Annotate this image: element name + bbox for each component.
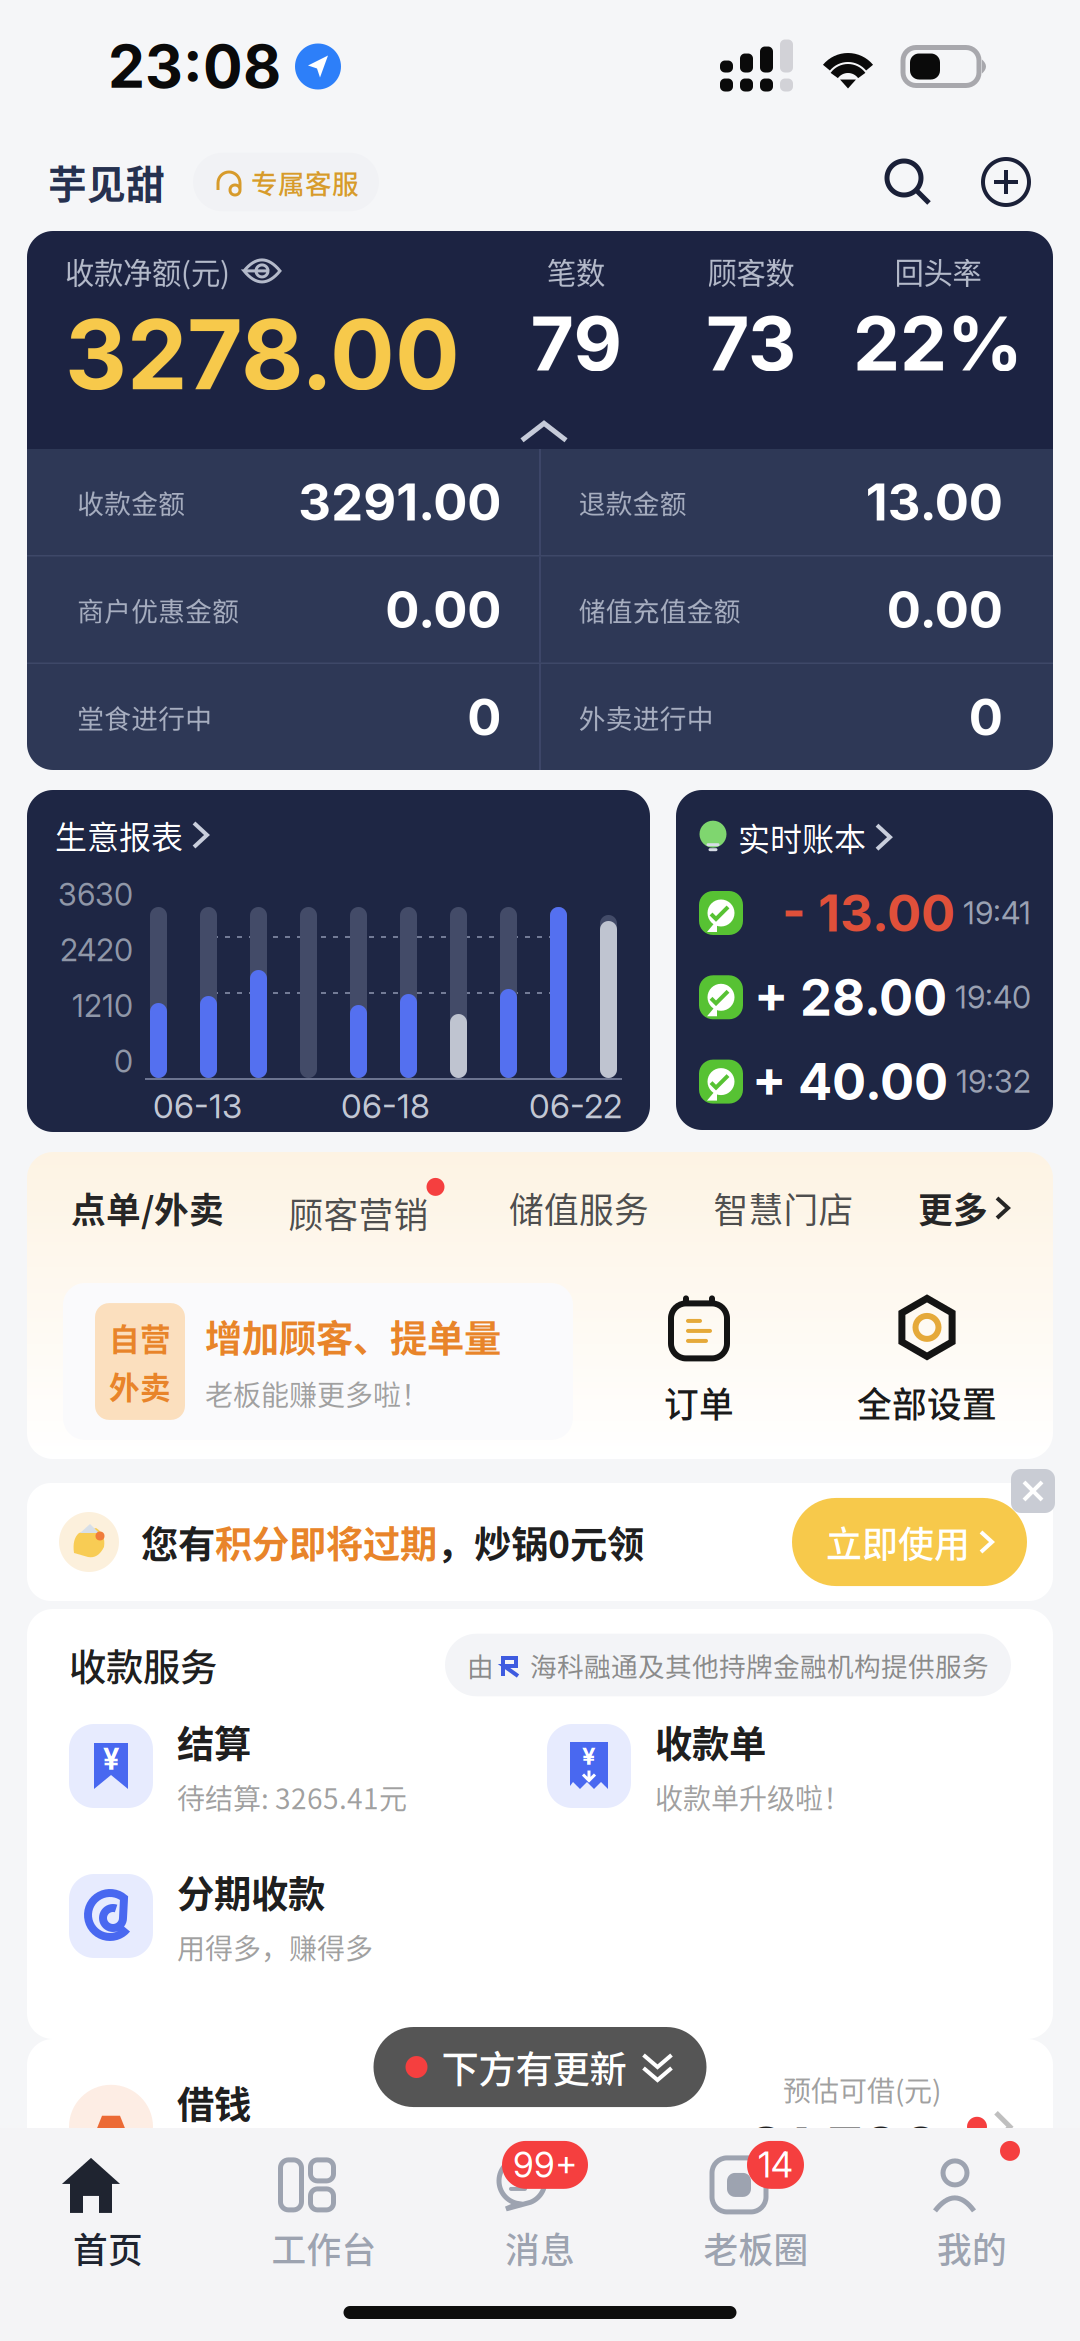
staticText: 增加顾客、提单量 — [205, 1309, 501, 1363]
staticText: 老板能赚更多啦！ — [205, 1373, 429, 1414]
staticText: 回头率 — [894, 250, 981, 292]
staticText: 收款净额(元) — [65, 250, 230, 292]
staticText: 立即使用 — [826, 1516, 970, 1568]
button[interactable]: 全部设置 — [847, 1283, 1007, 1440]
staticText: 待结算: 3265.41元 — [177, 1777, 407, 1817]
staticText: 点单/外卖 — [71, 1183, 224, 1233]
staticText: 3630 — [58, 876, 133, 913]
staticText: 自营 — [109, 1315, 171, 1359]
staticText: 借钱 — [177, 2075, 251, 2130]
button[interactable]: 自营 — [63, 1283, 573, 1440]
button[interactable]: 生意报表 — [27, 790, 650, 1132]
staticText: 0 — [969, 686, 1003, 748]
button[interactable]: 更多 — [918, 1183, 1009, 1233]
button[interactable]: 储值服务 — [509, 1183, 649, 1233]
staticText: 81,700 — [747, 2113, 941, 2184]
staticText: 19:32 — [956, 1063, 1031, 1100]
staticText: 13.00 — [866, 471, 1003, 533]
staticText: 我的 — [937, 2223, 1007, 2273]
staticText: 收款单 — [655, 1715, 766, 1769]
staticText: 06-22 — [529, 1086, 622, 1126]
staticText: 99+ — [513, 2144, 577, 2186]
button[interactable]: 关闭 — [1011, 1469, 1055, 1513]
staticText: 芋见甜 — [48, 154, 165, 210]
staticText: 收款金额 — [77, 483, 185, 521]
staticText: 储值服务 — [509, 1183, 649, 1233]
staticText: 14 — [758, 2144, 793, 2186]
staticText: ¥ — [103, 1741, 119, 1777]
staticText: 随借随还，最快1分钟放款 — [177, 2137, 501, 2178]
staticText: 19:41 — [963, 894, 1031, 931]
staticText: 0.00 — [385, 579, 501, 640]
staticText: 3291.00 — [298, 471, 501, 533]
staticText: 2420 — [60, 932, 133, 969]
button[interactable]: 点单/外卖 — [71, 1183, 224, 1233]
staticText: 外卖进行中 — [579, 698, 714, 736]
staticText: - 13.00 — [782, 882, 955, 944]
button[interactable]: 首页 — [0, 2128, 216, 2276]
staticText: 0 — [467, 686, 501, 748]
staticText: 专属客服 — [251, 163, 359, 201]
staticText: 智慧门店 — [713, 1183, 853, 1233]
button[interactable]: 立即使用 — [792, 1498, 1027, 1586]
staticText: ¥ — [582, 1741, 596, 1770]
staticText: 堂食进行中 — [77, 698, 212, 736]
staticText: 23:08 — [108, 31, 281, 102]
button[interactable]: 订单 — [629, 1283, 769, 1440]
staticText: + 40.00 — [752, 1051, 948, 1112]
button[interactable]: 14 — [648, 2128, 864, 2276]
staticText: 退款金额 — [579, 483, 687, 521]
staticText: 0.00 — [887, 579, 1003, 640]
staticText: 商户优惠金额 — [77, 590, 239, 629]
button[interactable]: 智慧门店 — [713, 1183, 853, 1233]
staticText: 积分即将过期 — [215, 1515, 437, 1569]
button[interactable]: 搜索 — [882, 156, 934, 208]
staticText: 下方有更新 — [441, 2040, 626, 2094]
button[interactable]: 下方有更新 — [373, 2027, 706, 2107]
staticText: 06-18 — [341, 1086, 430, 1126]
staticText: 由 — [467, 1646, 494, 1684]
staticText: 06-13 — [153, 1086, 242, 1126]
staticText: 全部设置 — [857, 1377, 997, 1428]
button[interactable]: 实时账本 — [676, 790, 1053, 1130]
button[interactable]: 分期收款 — [69, 1871, 539, 1961]
staticText: 海科融通及其他持牌金融机构提供服务 — [530, 1646, 989, 1684]
staticText: 0 — [114, 1043, 133, 1080]
staticText: 外卖 — [109, 1363, 171, 1408]
staticText: 更多 — [918, 1183, 988, 1233]
staticText: 用得多，赚得多 — [177, 1927, 373, 1967]
staticText: 订单 — [664, 1377, 734, 1428]
button[interactable]: 我的 — [864, 2128, 1080, 2276]
staticText: 预估可借(元) — [783, 2069, 941, 2109]
staticText: 首页 — [73, 2223, 143, 2273]
staticText: 生意报表 — [55, 812, 183, 858]
staticText: 1210 — [72, 987, 133, 1024]
button[interactable]: ¥ — [69, 1721, 539, 1811]
button[interactable]: 顾客营销 — [288, 1178, 444, 1238]
staticText: 19:40 — [955, 979, 1031, 1016]
staticText: + 28.00 — [754, 967, 947, 1028]
staticText: 分期收款 — [177, 1865, 325, 1919]
staticText: 79 — [530, 298, 621, 388]
staticText: 3278.00 — [65, 296, 460, 412]
staticText: 顾客营销 — [288, 1188, 428, 1238]
button[interactable]: 工作台 — [216, 2128, 432, 2276]
staticText: 73 — [706, 298, 796, 388]
button[interactable]: 专属客服 — [193, 153, 379, 211]
staticText: ，炒锅0元领 — [437, 1515, 644, 1569]
staticText: 结算 — [177, 1715, 251, 1769]
staticText: 老板圈 — [703, 2223, 808, 2273]
button[interactable]: 添加 — [980, 156, 1032, 208]
button[interactable]: ¥ — [547, 1721, 1017, 1811]
button[interactable]: 借钱 — [27, 2039, 1053, 2219]
staticText: 实时账本 — [738, 814, 866, 860]
staticText: 储值充值金额 — [579, 590, 741, 629]
button[interactable]: 99+ — [432, 2128, 648, 2276]
staticText: 顾客数 — [707, 250, 794, 292]
staticText: 收款服务 — [69, 1638, 217, 1692]
staticText: 22% — [853, 298, 1023, 388]
staticText: 收款单升级啦！ — [655, 1777, 851, 1817]
staticText: 笔数 — [547, 250, 605, 292]
staticText: 您有 — [141, 1515, 215, 1569]
staticText: 消息 — [505, 2223, 575, 2273]
